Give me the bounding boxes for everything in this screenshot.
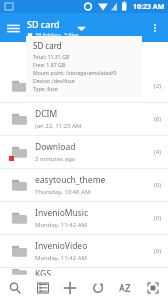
staticText: Monday, 11:42 AM xyxy=(35,221,87,229)
button[interactable]: InvenioVideo xyxy=(0,235,168,267)
staticText: InvenioMusic xyxy=(35,207,89,219)
button[interactable]: easytouch_theme xyxy=(0,169,168,201)
staticText: easytouch_theme xyxy=(35,174,106,186)
button[interactable]: DCIM xyxy=(0,103,168,135)
button[interactable]: More options xyxy=(142,15,168,41)
staticText: DCIM xyxy=(35,108,58,120)
staticText: Free: 1.87 GB xyxy=(33,61,66,68)
staticText: Mount point: /storage/emulated/0 xyxy=(33,69,117,76)
button[interactable]: Add xyxy=(58,276,82,300)
button[interactable]: data xyxy=(0,70,168,102)
staticText: Monday, 11:42 AM xyxy=(35,254,87,262)
button[interactable]: KGS xyxy=(0,268,168,276)
button[interactable]: Sort xyxy=(113,276,137,300)
staticText: (2) xyxy=(154,82,162,90)
staticText: Jan 22, 7:04 AM xyxy=(35,89,79,97)
button[interactable]: Search xyxy=(3,276,27,300)
staticText: SD card xyxy=(33,40,62,51)
staticText: (0) xyxy=(154,181,162,189)
staticText: Download xyxy=(35,141,76,153)
button[interactable]: Change storage xyxy=(72,19,90,37)
button[interactable]: Refresh xyxy=(86,276,110,300)
button[interactable]: Change view xyxy=(31,276,55,300)
staticText: (4) xyxy=(154,148,162,156)
staticText: Total: 11.31 GB xyxy=(33,53,70,60)
staticText: Thursday, 10:46 AM xyxy=(35,188,91,196)
button[interactable]: InvenioMusic xyxy=(0,202,168,234)
staticText: (0) xyxy=(154,247,162,255)
button[interactable]: Open navigation drawer xyxy=(0,15,26,41)
button[interactable]: Download xyxy=(0,136,168,168)
staticText: data xyxy=(35,75,53,87)
button[interactable]: Select xyxy=(141,276,165,300)
staticText: Jan 22, 11:25 AM xyxy=(35,122,82,130)
staticText: (0) xyxy=(154,214,162,222)
staticText: InvenioVideo xyxy=(35,240,88,252)
staticText: (6) xyxy=(154,115,162,123)
staticText: 2 minutes ago xyxy=(35,155,76,163)
staticText: 10:23 AM xyxy=(133,2,165,12)
staticText: Type: fuse xyxy=(33,85,58,92)
staticText: 38 folders, 3 files xyxy=(35,31,79,38)
staticText: SD card xyxy=(27,18,60,30)
staticText: Device: /dev/fuse xyxy=(33,77,75,84)
staticText: KGS xyxy=(35,268,51,276)
